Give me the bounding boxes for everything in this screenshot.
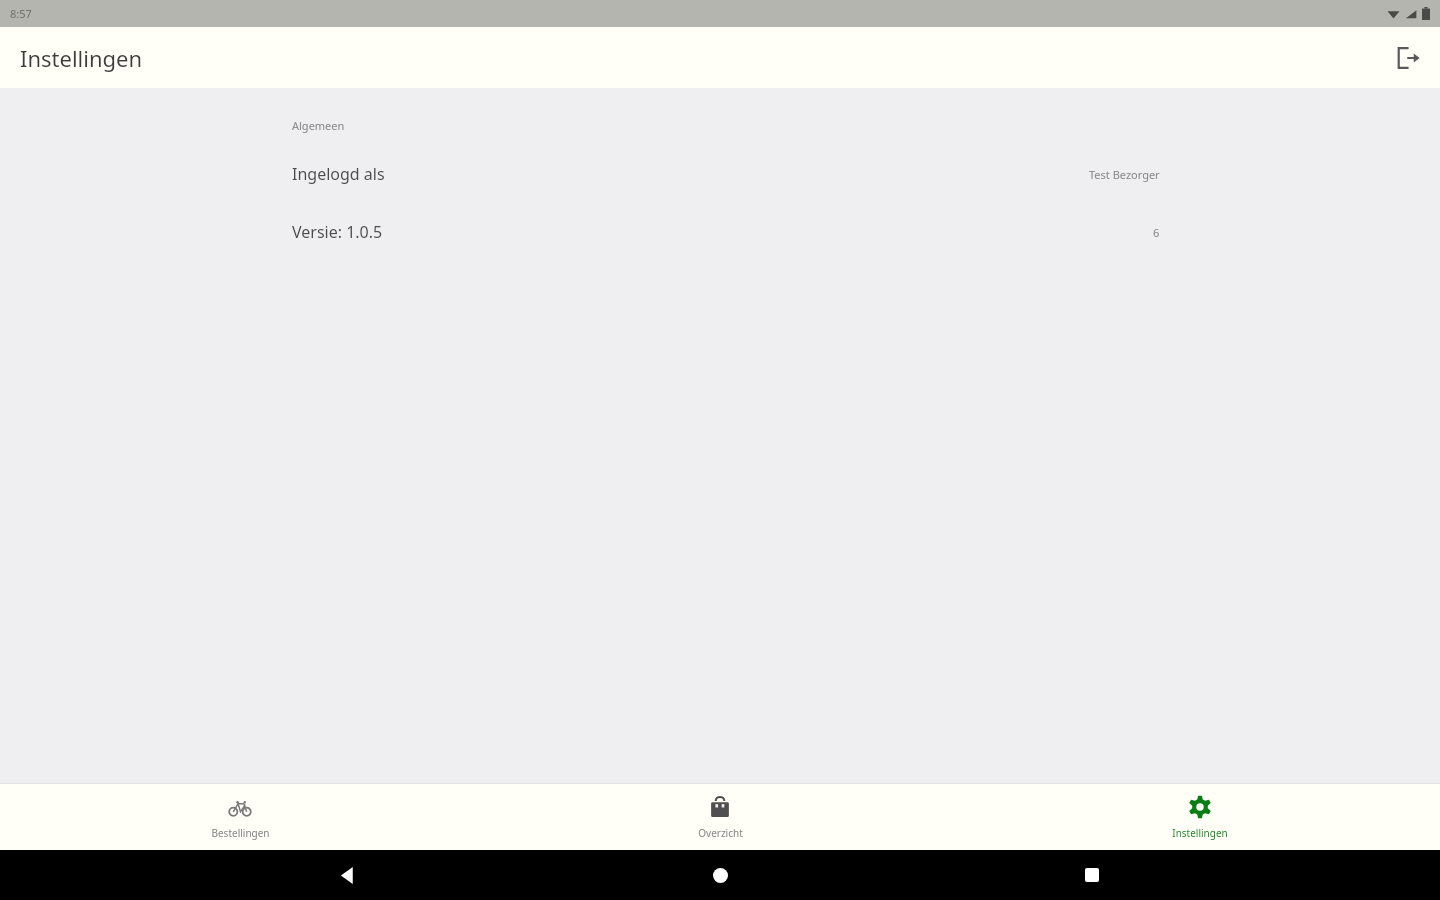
staticText: 8:57 <box>10 6 32 21</box>
button[interactable]: Ingelogd als <box>0 163 1440 185</box>
button[interactable]: Versie: 1.0.5 <box>0 221 1440 243</box>
button[interactable]: Overzicht <box>480 784 960 850</box>
button[interactable]: Home <box>696 851 744 899</box>
staticText: Instellingen <box>1172 826 1228 840</box>
staticText: Overzicht <box>698 826 743 840</box>
staticText: Instellingen <box>20 43 143 73</box>
button[interactable]: Bestellingen <box>0 784 480 850</box>
staticText: Test Bezorger <box>1089 167 1160 182</box>
staticText: Ingelogd als <box>292 163 385 185</box>
staticText: Versie: 1.0.5 <box>292 221 383 243</box>
staticText: Bestellingen <box>211 826 270 840</box>
button[interactable]: Instellingen <box>960 784 1440 850</box>
button[interactable]: Recente apps <box>1068 851 1116 899</box>
button[interactable]: Terug <box>324 851 372 899</box>
staticText: 6 <box>1153 225 1160 240</box>
staticText: Algemeen <box>292 118 345 133</box>
button[interactable]: Uitloggen <box>1384 34 1432 82</box>
